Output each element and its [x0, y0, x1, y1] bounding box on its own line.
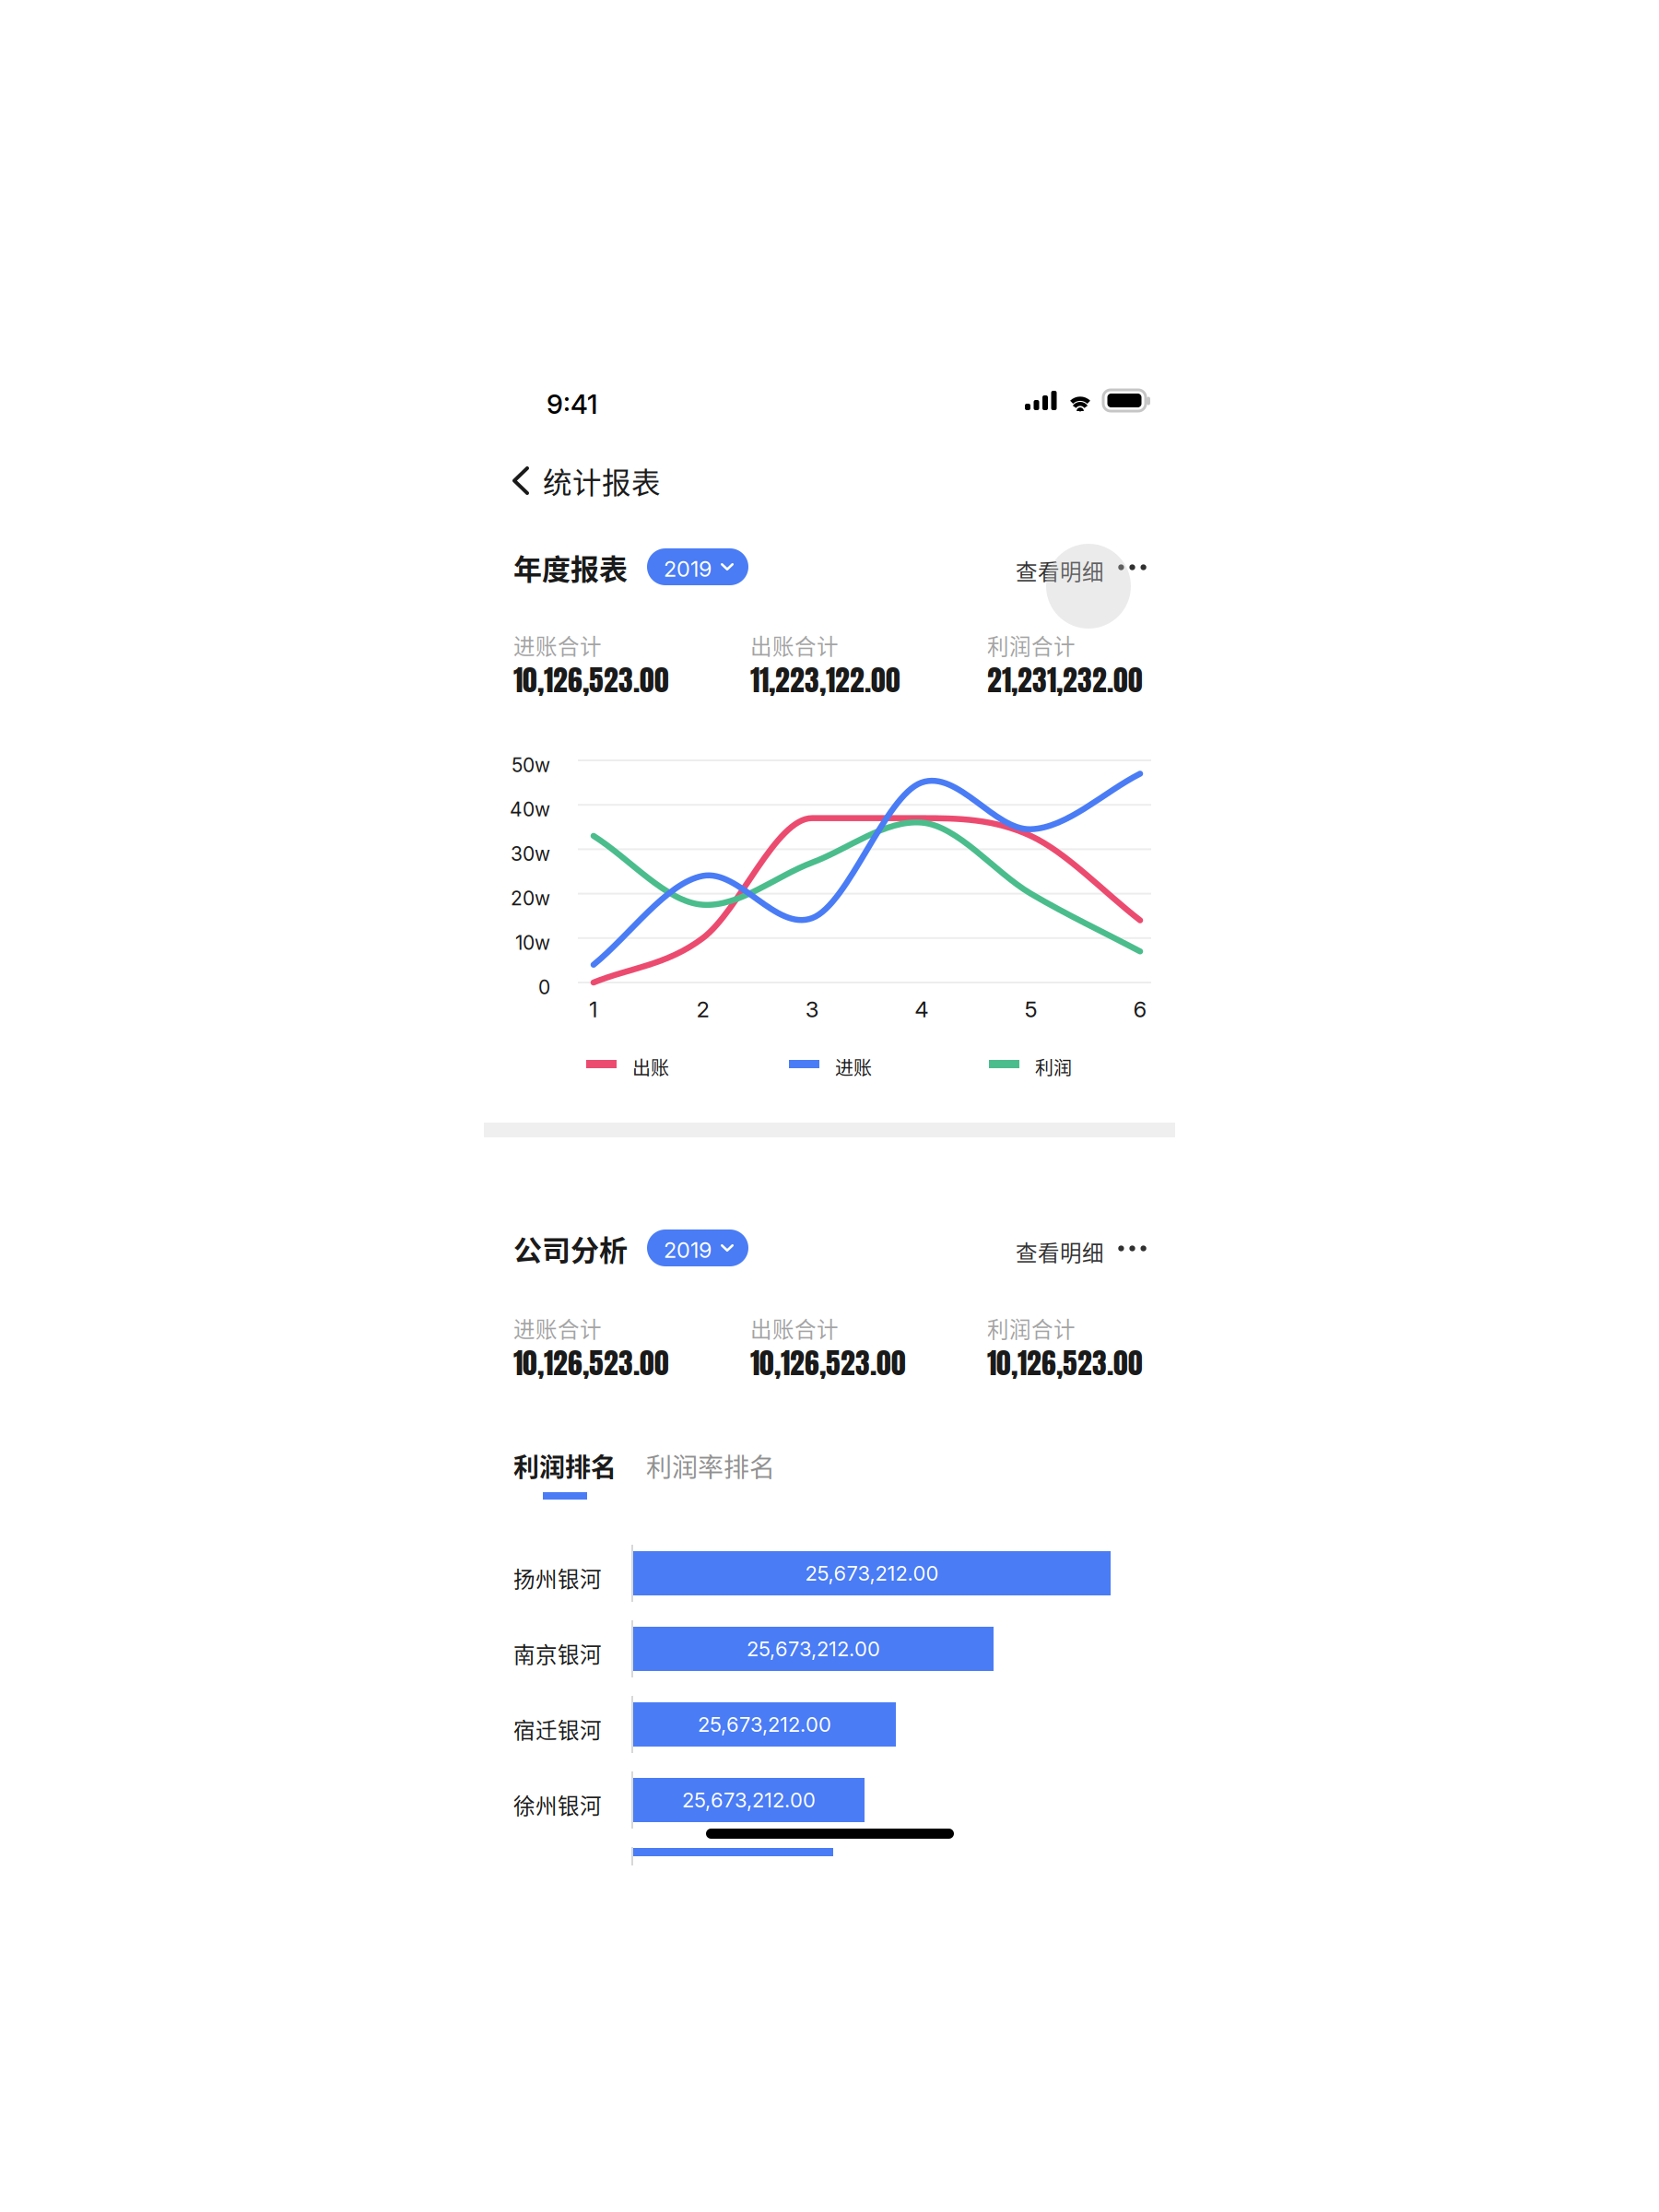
- staticText: 进账合计: [513, 629, 602, 661]
- staticText: 进账: [835, 1053, 872, 1080]
- staticText: 年度报表: [513, 547, 628, 588]
- staticText: 出账合计: [750, 629, 839, 661]
- staticText: 利润率排名: [646, 1447, 775, 1484]
- staticText: 利润: [1035, 1053, 1072, 1080]
- staticText: 利润合计: [987, 629, 1076, 661]
- button[interactable]: 2019: [647, 548, 748, 585]
- staticText: 10,126,523.00: [513, 658, 669, 702]
- staticText: 扬州银河: [513, 1562, 602, 1594]
- staticText: 10,126,523.00: [987, 1341, 1143, 1385]
- staticText: 南京银河: [513, 1638, 602, 1669]
- staticText: 利润合计: [987, 1312, 1076, 1344]
- staticText: 查看明细: [1016, 555, 1104, 586]
- staticText: 出账合计: [750, 1312, 839, 1344]
- staticText: 25,673,212.00: [682, 1788, 816, 1812]
- staticText: 40w: [510, 798, 550, 821]
- staticText: 50w: [512, 753, 550, 777]
- staticText: 2: [696, 996, 709, 1023]
- button[interactable]: 利润排名: [513, 1447, 617, 1484]
- staticText: 1: [589, 996, 598, 1023]
- button[interactable]: 统计报表: [512, 459, 697, 503]
- staticText: 30w: [511, 842, 550, 866]
- staticText: 利润排名: [513, 1447, 617, 1484]
- staticText: 25,673,212.00: [698, 1712, 831, 1737]
- staticText: 10w: [515, 931, 550, 954]
- button[interactable]: 利润率排名: [646, 1447, 775, 1484]
- staticText: 5: [1024, 996, 1037, 1023]
- staticText: 2019: [664, 1237, 712, 1263]
- button[interactable]: 查看明细: [1016, 548, 1150, 585]
- staticText: 出账: [632, 1053, 669, 1080]
- staticText: 9:41: [547, 388, 597, 420]
- staticText: 20w: [511, 887, 550, 910]
- staticText: 4: [915, 996, 928, 1023]
- staticText: 进账合计: [513, 1312, 602, 1344]
- staticText: 11,223,122.00: [750, 658, 900, 702]
- staticText: 查看明细: [1016, 1236, 1104, 1267]
- staticText: 0: [538, 975, 550, 999]
- staticText: 徐州银河: [513, 1789, 602, 1820]
- staticText: 公司分析: [513, 1228, 628, 1269]
- staticText: 2019: [664, 556, 712, 582]
- button[interactable]: 2019: [647, 1230, 748, 1266]
- staticText: 25,673,212.00: [805, 1561, 939, 1586]
- staticText: 6: [1133, 996, 1147, 1023]
- staticText: 统计报表: [543, 460, 661, 502]
- staticText: 21,231,232.00: [987, 658, 1143, 702]
- staticText: 3: [805, 996, 819, 1023]
- staticText: 25,673,212.00: [747, 1637, 880, 1661]
- staticText: 宿迁银河: [513, 1713, 602, 1745]
- staticText: 10,126,523.00: [513, 1341, 669, 1385]
- button[interactable]: 查看明细: [1016, 1230, 1150, 1266]
- staticText: 10,126,523.00: [750, 1341, 906, 1385]
